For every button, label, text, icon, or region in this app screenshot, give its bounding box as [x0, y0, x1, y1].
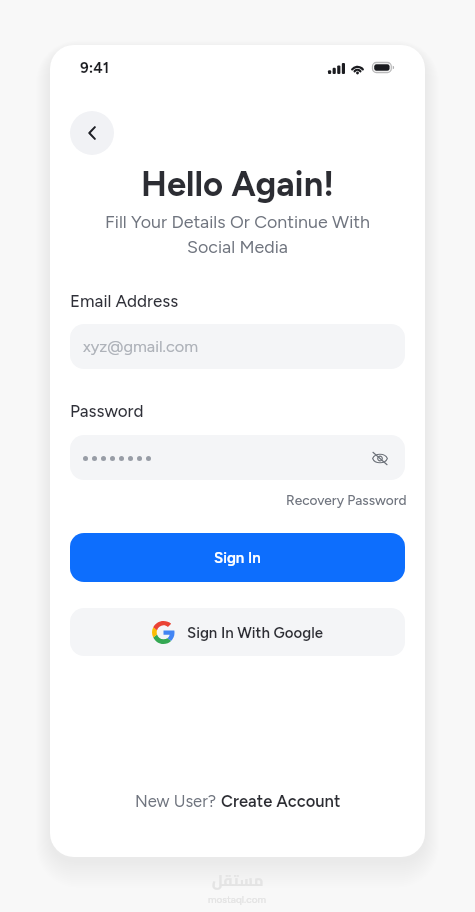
staticText: Sign In With Google — [187, 624, 324, 642]
staticText: xyz@gmail.com — [83, 337, 199, 357]
button[interactable]: Sign In — [70, 533, 405, 582]
button[interactable]: Show password — [367, 445, 393, 471]
button[interactable]: Recovery Password — [286, 492, 407, 508]
staticText: 9:41 — [80, 59, 110, 77]
staticText: Sign In — [214, 549, 261, 567]
staticText: مستقل — [212, 866, 264, 894]
button[interactable]: Sign In With Google — [70, 608, 405, 656]
staticText: Password — [70, 401, 144, 421]
staticText: mostaql.com — [208, 893, 267, 905]
staticText: New User? — [135, 791, 221, 811]
staticText: Email Address — [70, 291, 179, 311]
staticText: Hello Again! — [50, 163, 425, 204]
button[interactable]: Back — [70, 111, 114, 155]
button[interactable]: Create Account — [221, 791, 341, 811]
button[interactable]: Show password — [70, 435, 405, 480]
button[interactable]: xyz@gmail.com — [70, 324, 405, 369]
staticText: Fill Your Details Or Continue With Socia… — [50, 211, 425, 257]
